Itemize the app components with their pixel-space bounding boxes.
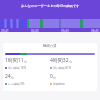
- staticText: 23:41: [1, 29, 9, 33]
- staticText: 分: [53, 76, 56, 80]
- staticText: 05:49: [61, 29, 69, 33]
- staticText: 08:45: [91, 29, 99, 33]
- staticText: 覚醒時間: [53, 82, 65, 86]
- staticText: 分: [11, 76, 14, 80]
- staticText: 分: [69, 60, 72, 64]
- staticText: 24: [5, 73, 11, 80]
- staticText: みんなのユーザーさまの昨日の睡眠です: [21, 4, 80, 8]
- staticText: レム睡眠 5%: [8, 82, 25, 86]
- staticText: 1時間11: [5, 57, 24, 64]
- staticText: 浅い睡眠 61%: [53, 66, 72, 70]
- staticText: 睡眠の質: [43, 44, 57, 48]
- staticText: 0: [50, 73, 53, 80]
- button[interactable]: 睡眠の質: [3, 43, 97, 91]
- staticText: 分: [24, 60, 27, 64]
- staticText: 深い睡眠 16%: [8, 66, 27, 70]
- staticText: 4時間32: [50, 57, 69, 64]
- staticText: 02:45: [31, 29, 39, 33]
